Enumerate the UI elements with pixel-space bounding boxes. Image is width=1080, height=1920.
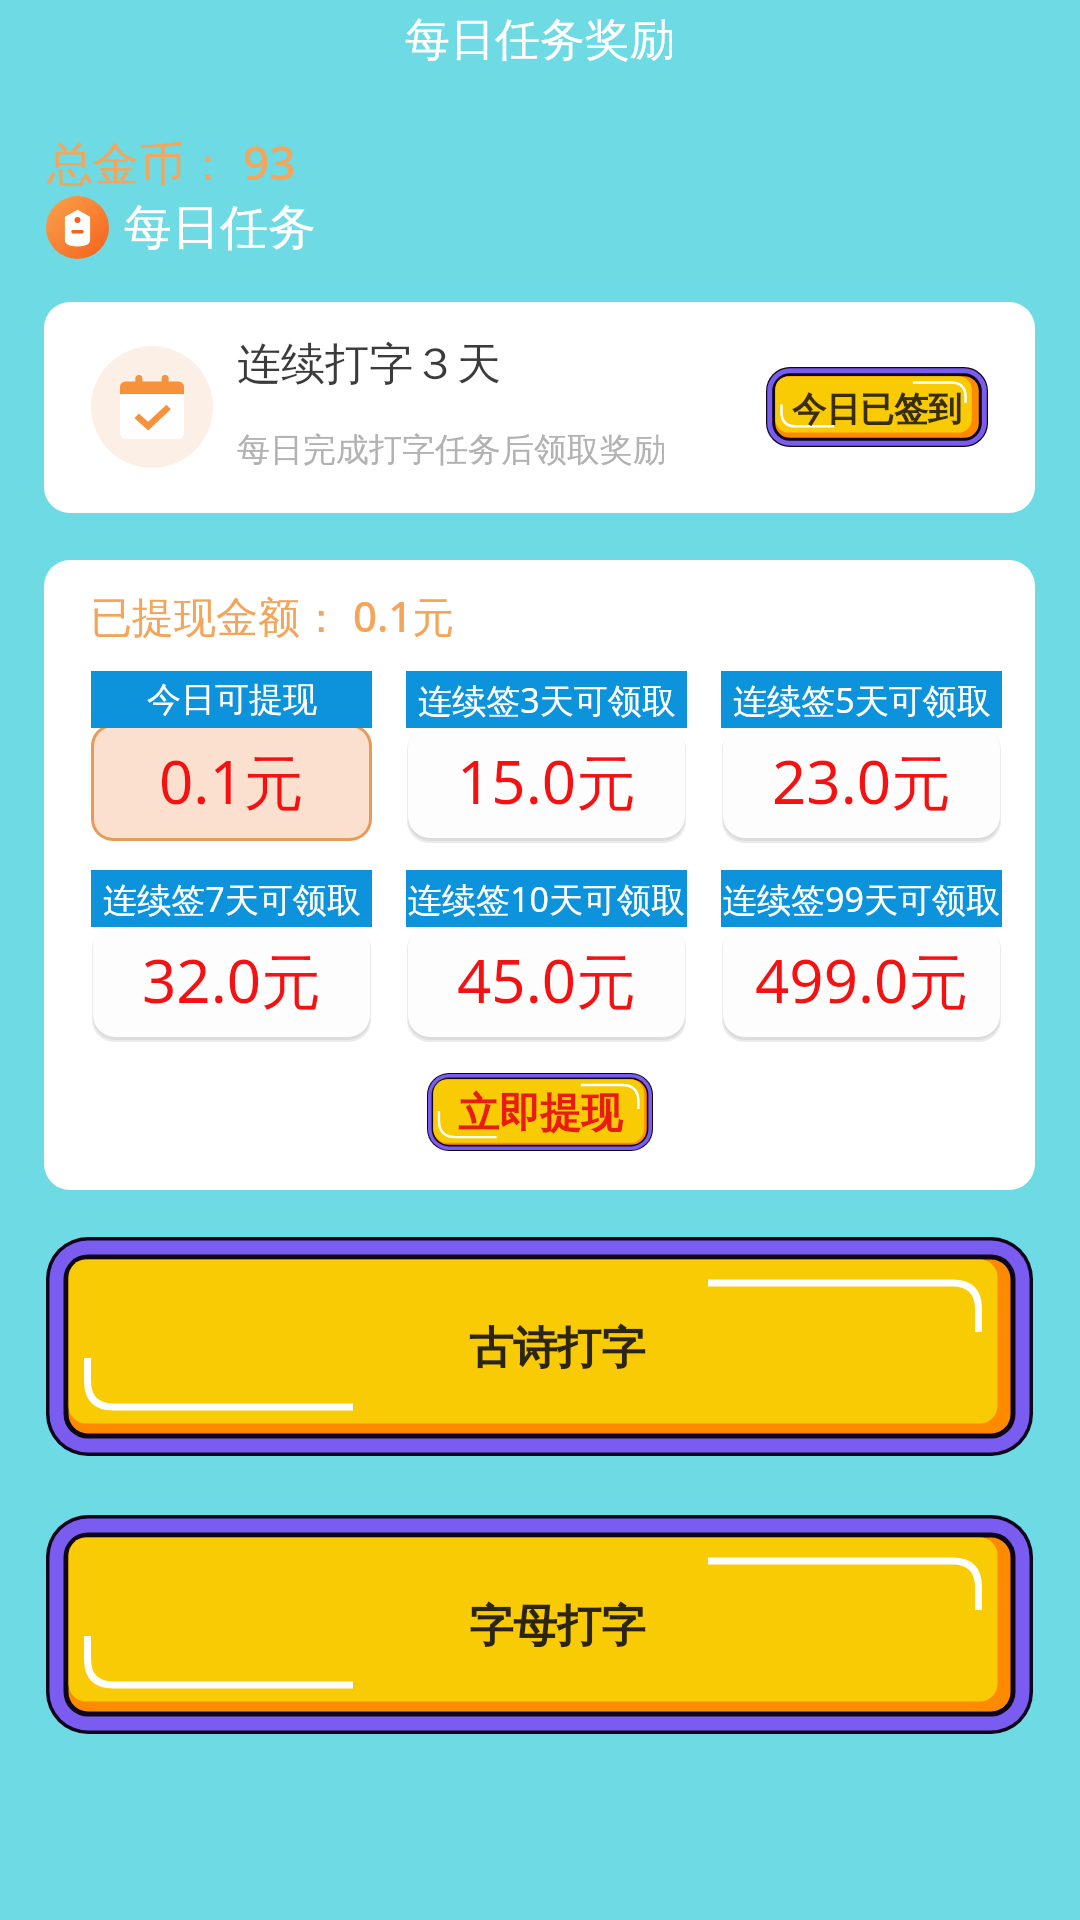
staticText: 总金币： 93 — [47, 131, 296, 194]
staticText: 今日可提现 — [147, 678, 317, 721]
staticText: 连续打字３天 — [237, 337, 501, 392]
button[interactable]: 字母打字 — [46, 1515, 1033, 1734]
button[interactable]: 连续签99天可领取 — [721, 870, 1002, 1040]
staticText: 连续签7天可领取 — [103, 876, 361, 922]
staticText: 499.0元 — [755, 939, 969, 1021]
staticText: 立即提现 — [458, 1088, 622, 1140]
staticText: 连续签5天可领取 — [733, 677, 991, 723]
staticText: 古诗打字 — [469, 1321, 645, 1376]
staticText: 23.0元 — [772, 740, 952, 822]
staticText: 连续签3天可领取 — [418, 677, 676, 723]
staticText: 今日已签到 — [792, 388, 962, 431]
button[interactable]: 今日可提现 — [91, 671, 372, 841]
button[interactable]: 古诗打字 — [46, 1237, 1033, 1456]
button[interactable]: 今日已签到 — [766, 367, 988, 447]
button[interactable]: 立即提现 — [427, 1073, 653, 1151]
button[interactable]: 连续签3天可领取 — [406, 671, 687, 841]
button[interactable]: 连续签5天可领取 — [721, 671, 1002, 841]
staticText: 32.0元 — [142, 939, 322, 1021]
staticText: 15.0元 — [457, 740, 637, 822]
staticText: 已提现金额： 0.1元 — [90, 587, 455, 644]
staticText: 字母打字 — [469, 1599, 645, 1654]
staticText: 每日完成打字任务后领取奖励 — [237, 429, 666, 471]
staticText: 每日任务奖励 — [405, 12, 675, 69]
staticText: 连续签99天可领取 — [723, 876, 1000, 922]
staticText: 每日任务 — [124, 198, 316, 258]
button[interactable]: 连续签7天可领取 — [91, 870, 372, 1040]
button[interactable]: 连续签10天可领取 — [406, 870, 687, 1040]
staticText: 连续签10天可领取 — [408, 876, 685, 922]
staticText: 45.0元 — [457, 939, 637, 1021]
staticText: 0.1元 — [159, 740, 304, 822]
